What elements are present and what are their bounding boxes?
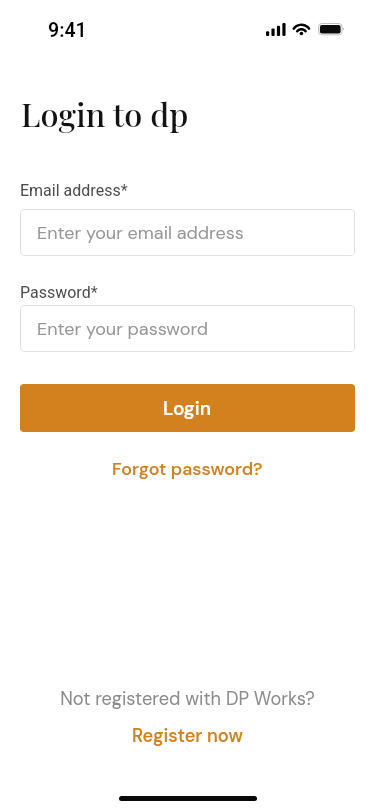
staticText: Not registered with DP Works? (60, 687, 315, 711)
staticText: Password* (20, 283, 98, 302)
other: Wi-Fi (292, 21, 312, 37)
button[interactable]: Enter your password (20, 305, 355, 352)
other: Battery (318, 23, 346, 36)
staticText: Login (163, 396, 212, 421)
button[interactable]: Enter your email address (20, 209, 355, 256)
button[interactable]: Forgot password? (0, 452, 375, 485)
staticText: Email address* (20, 181, 128, 200)
button[interactable]: Login (20, 384, 355, 432)
button[interactable]: Register now (0, 719, 375, 753)
staticText: Enter your email address (37, 221, 244, 244)
staticText: Forgot password? (112, 457, 263, 480)
other: Cellular signal (266, 22, 286, 37)
staticText: Login to dp (21, 92, 189, 135)
staticText: Register now (132, 724, 243, 748)
staticText: 9:41 (48, 19, 87, 42)
staticText: Enter your password (37, 317, 209, 340)
